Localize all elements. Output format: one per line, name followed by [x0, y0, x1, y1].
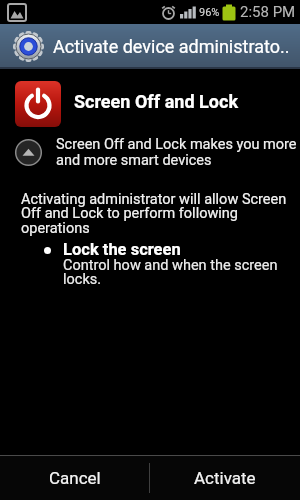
staticText: Lock the screen: [63, 240, 181, 259]
staticText: 2:58 PM: [240, 3, 296, 21]
staticText: Activating administrator will allow Scre…: [21, 191, 287, 237]
staticText: Screen Off and Lock: [74, 91, 239, 112]
staticText: Control how and when the screen locks.: [63, 257, 278, 287]
staticText: Cancel: [49, 468, 101, 488]
staticText: Activate device administrato..: [53, 36, 290, 57]
staticText: Screen Off and Lock makes you more and m…: [56, 136, 297, 168]
staticText: Activate: [194, 468, 256, 488]
button[interactable]: Cancel: [0, 456, 149, 500]
staticText: 96%: [199, 6, 220, 19]
button[interactable]: Activate: [150, 456, 300, 500]
button[interactable]: Screen Off and Lock makes you more and m…: [15, 136, 297, 168]
